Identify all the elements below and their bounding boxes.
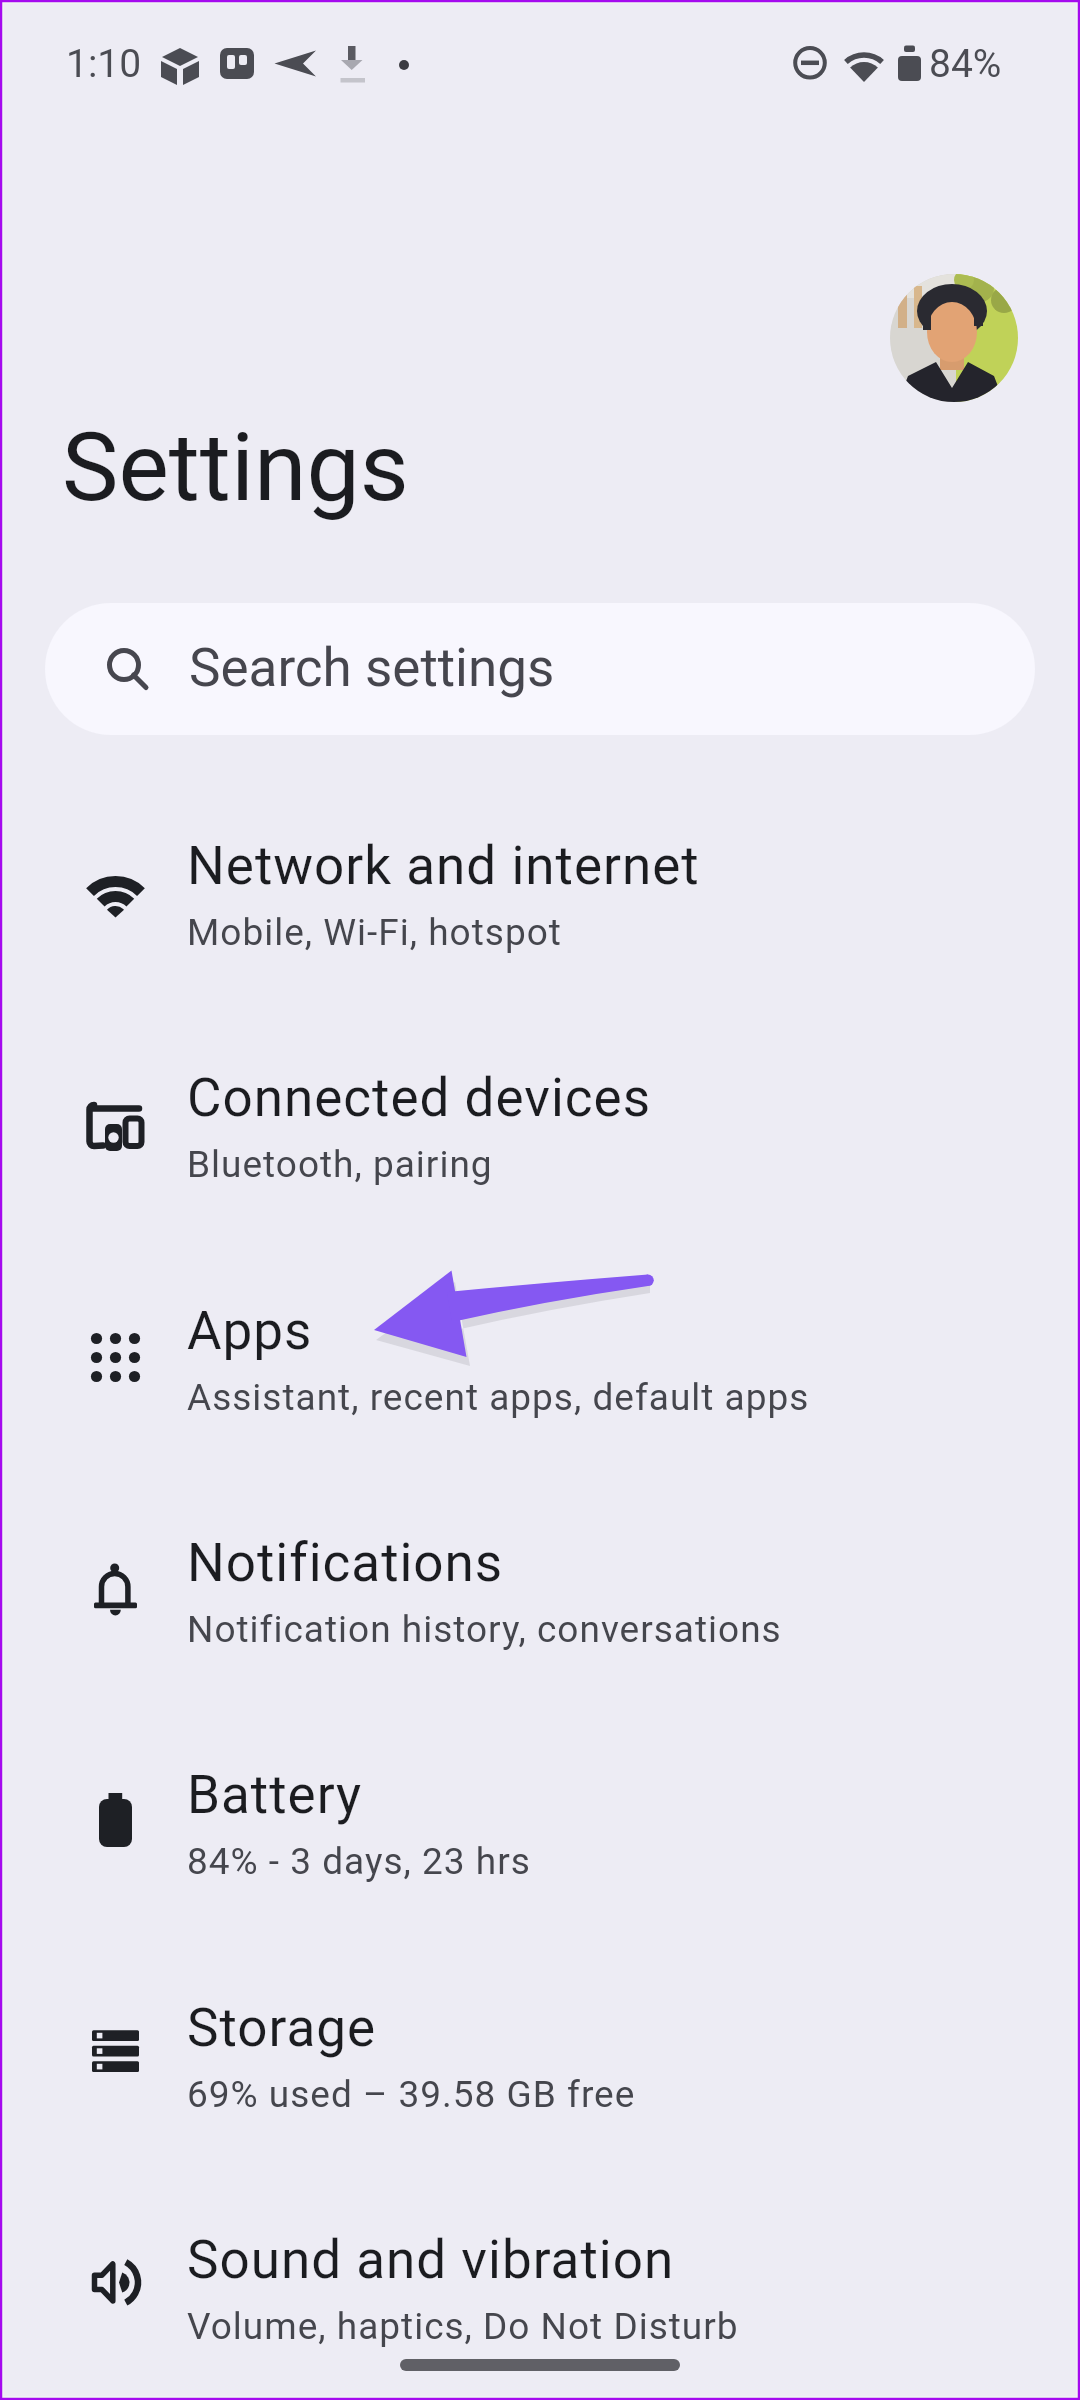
- staticText: Mobile, Wi-Fi, hotspot: [187, 911, 562, 954]
- staticText: 84%: [929, 41, 1002, 87]
- button[interactable]: Notifications: [0, 1476, 1080, 1708]
- staticText: 84% - 3 days, 23 hrs: [187, 1840, 531, 1883]
- button[interactable]: Search settings: [45, 603, 1035, 735]
- staticText: Search settings: [189, 637, 555, 699]
- button[interactable]: [890, 274, 1018, 402]
- button[interactable]: Storage: [0, 1941, 1080, 2173]
- staticText: Connected devices: [187, 1067, 652, 1129]
- staticText: Battery: [187, 1764, 363, 1826]
- staticText: 69% used – 39.58 GB free: [187, 2073, 636, 2116]
- staticText: Apps: [187, 1300, 313, 1362]
- staticText: Network and internet: [187, 835, 700, 897]
- button[interactable]: Sound and vibration: [0, 2173, 1080, 2400]
- staticText: Bluetooth, pairing: [187, 1143, 493, 1186]
- staticText: Settings: [62, 412, 409, 523]
- button[interactable]: Connected devices: [0, 1011, 1080, 1243]
- button[interactable]: Network and internet: [0, 779, 1080, 1011]
- staticText: Notification history, conversations: [187, 1608, 782, 1651]
- staticText: 1:10: [66, 41, 142, 87]
- staticText: Storage: [187, 1997, 377, 2059]
- staticText: Sound and vibration: [187, 2229, 675, 2291]
- button[interactable]: Battery: [0, 1708, 1080, 1940]
- staticText: Volume, haptics, Do Not Disturb: [187, 2305, 739, 2348]
- button[interactable]: Apps: [0, 1244, 1080, 1476]
- staticText: Notifications: [187, 1532, 504, 1594]
- staticText: Assistant, recent apps, default apps: [187, 1376, 810, 1419]
